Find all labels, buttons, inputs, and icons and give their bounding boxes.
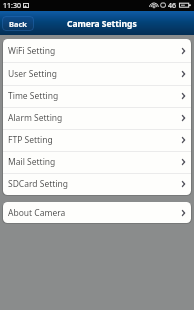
staticText: 11:30	[3, 1, 21, 11]
button[interactable]: Time Setting	[3, 85, 191, 107]
button[interactable]: WiFi Setting	[3, 39, 191, 62]
button[interactable]: User Setting	[3, 62, 191, 85]
staticText: Back	[9, 19, 27, 29]
button[interactable]: FTP Setting	[3, 129, 191, 151]
staticText: FTP Setting	[8, 134, 53, 146]
staticText: SDCard Setting	[8, 178, 69, 190]
staticText: WiFi Setting	[8, 45, 56, 57]
button[interactable]: Back	[2, 16, 34, 31]
staticText: Time Setting	[8, 90, 59, 102]
staticText: Alarm Setting	[8, 112, 63, 124]
staticText: About Camera	[8, 207, 66, 219]
button[interactable]: About Camera	[3, 202, 191, 223]
staticText: Mail Setting	[8, 156, 56, 168]
staticText: Camera Settings	[67, 18, 137, 30]
staticText: 46	[168, 1, 177, 11]
button[interactable]: SDCard Setting	[3, 173, 191, 195]
button[interactable]: Alarm Setting	[3, 107, 191, 129]
staticText: User Setting	[8, 68, 58, 80]
button[interactable]: Mail Setting	[3, 151, 191, 173]
